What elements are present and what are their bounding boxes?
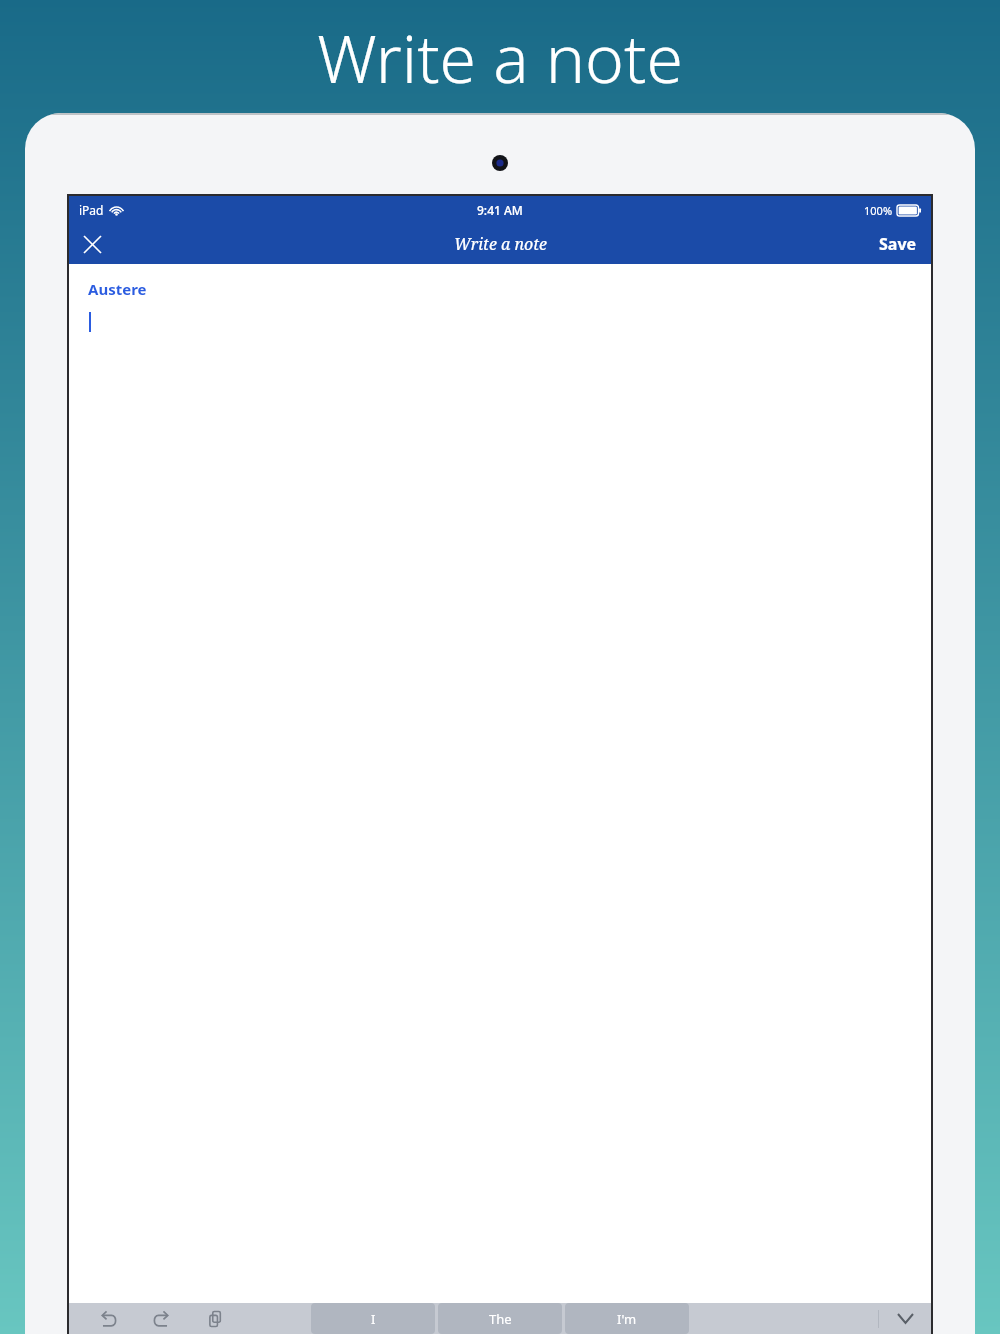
button[interactable]: Redo: [147, 1303, 177, 1334]
button[interactable]: Close: [69, 224, 115, 264]
staticText: Write a note: [317, 12, 683, 102]
button[interactable]: Undo: [93, 1303, 123, 1334]
staticText: Write a note: [454, 233, 547, 255]
button[interactable]: Austere: [69, 264, 931, 1303]
staticText: 9:41 AM: [477, 202, 523, 218]
staticText: I'm: [617, 1310, 637, 1328]
button[interactable]: I'm: [565, 1303, 689, 1334]
staticText: Austere: [88, 279, 147, 299]
button[interactable]: I: [311, 1303, 435, 1334]
staticText: 100%: [864, 203, 893, 218]
staticText: iPad: [79, 202, 104, 218]
button[interactable]: Hide keyboard: [879, 1303, 931, 1334]
button[interactable]: The: [438, 1303, 562, 1334]
staticText: Save: [879, 233, 917, 255]
button[interactable]: Paste: [201, 1303, 231, 1334]
staticText: The: [489, 1310, 512, 1328]
button[interactable]: Save: [865, 224, 931, 264]
staticText: I: [371, 1310, 376, 1328]
